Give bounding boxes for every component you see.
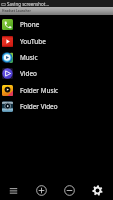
button[interactable]: Settings: [83, 181, 111, 200]
staticText: Headset Launcher: [2, 9, 31, 13]
button[interactable]: Video: [0, 65, 113, 82]
staticText: YouTube: [20, 37, 46, 46]
staticText: Saving screenshot…: [7, 1, 49, 7]
staticText: Phone: [20, 20, 40, 29]
staticText: Music: [20, 53, 38, 62]
button[interactable]: YouTube: [0, 33, 113, 49]
staticText: Folder Music: [20, 86, 59, 95]
staticText: Video: [20, 69, 37, 78]
button[interactable]: Menu: [0, 181, 27, 200]
button[interactable]: Folder Video: [0, 98, 113, 114]
button[interactable]: Music: [0, 49, 113, 65]
button[interactable]: Remove: [55, 181, 83, 200]
staticText: Folder Video: [20, 102, 58, 111]
button[interactable]: Folder Music: [0, 82, 113, 98]
button[interactable]: Add: [27, 181, 55, 200]
button[interactable]: Phone: [0, 16, 113, 33]
